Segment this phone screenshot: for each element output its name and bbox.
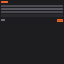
button[interactable]: Confirm [57,19,63,22]
button[interactable]: Title [1,1,8,3]
button[interactable]: Cancel [1,19,5,21]
